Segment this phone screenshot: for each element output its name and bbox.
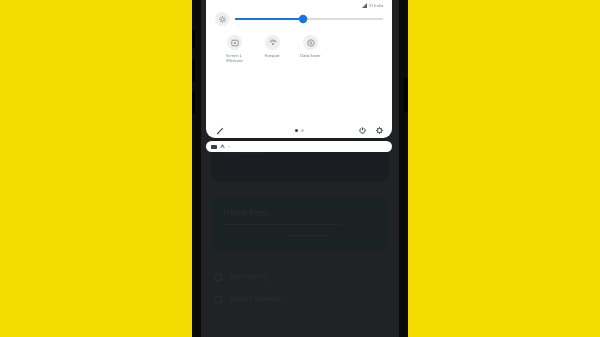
button[interactable]: My Number — [211, 135, 389, 183]
staticText: Phone From — [223, 207, 269, 218]
button[interactable]: Edit tiles — [214, 125, 225, 136]
button[interactable]: Settings — [374, 125, 385, 136]
button[interactable]: • — [206, 141, 392, 152]
staticText: • — [228, 144, 230, 149]
button[interactable]: Data Saver — [291, 35, 329, 58]
staticText: Recent Number — [230, 294, 282, 304]
button[interactable] — [235, 13, 383, 25]
button[interactable]: Brightness — [215, 12, 229, 26]
staticText: My Number — [223, 145, 268, 156]
staticText: Data Saver — [300, 53, 321, 58]
staticText: Screen L — [226, 53, 242, 58]
button[interactable]: Power — [357, 125, 368, 136]
staticText: Hotspot — [264, 53, 280, 58]
staticText: Effectuate — [226, 58, 243, 63]
button[interactable]: Hotspot — [253, 35, 291, 58]
staticText: Eas — [229, 14, 253, 33]
staticText: VI India — [369, 3, 384, 8]
staticText: Call History — [230, 272, 268, 282]
button[interactable]: Screen L — [215, 35, 253, 63]
